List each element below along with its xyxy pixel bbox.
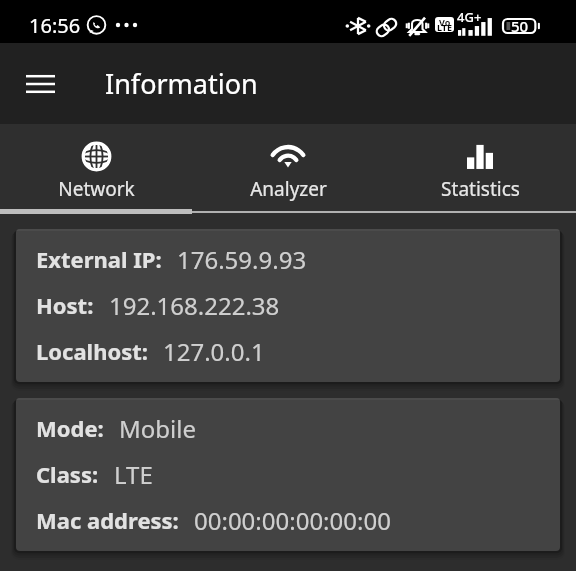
staticText: Network [58, 176, 135, 202]
staticText: Vo [439, 17, 451, 28]
staticText: 4G+ [457, 8, 482, 26]
button[interactable]: External IP: [16, 236, 560, 282]
button[interactable]: Open navigation menu [12, 56, 68, 112]
button[interactable]: Localhost: [16, 328, 560, 374]
staticText: Analyzer [250, 176, 327, 202]
staticText: Mobile [119, 412, 196, 445]
staticText: 127.0.0.1 [163, 335, 265, 368]
staticText: 176.59.9.93 [177, 243, 307, 276]
button[interactable]: Mac address: [16, 497, 560, 543]
staticText: 16:56 [29, 12, 81, 39]
button[interactable]: Host: [16, 282, 560, 328]
staticText: LTE [114, 458, 153, 491]
button[interactable]: Mode: [16, 405, 560, 451]
button[interactable]: Statistics [384, 124, 576, 214]
staticText: Information [105, 65, 258, 102]
button[interactable]: Analyzer [192, 124, 384, 214]
staticText: External IP: [36, 244, 162, 274]
staticText: Mac address: [36, 505, 179, 535]
staticText: Localhost: [36, 336, 148, 366]
staticText: Statistics [441, 176, 520, 202]
staticText: 192.168.222.38 [109, 289, 280, 322]
staticText: Class: [36, 459, 99, 489]
staticText: 00:00:00:00:00:00 [194, 504, 391, 537]
button[interactable]: Network [0, 124, 192, 214]
staticText: LTE [437, 21, 453, 32]
staticText: 50 [511, 16, 529, 36]
button[interactable]: Class: [16, 451, 560, 497]
staticText: Mode: [36, 413, 104, 443]
staticText: Host: [36, 290, 94, 320]
